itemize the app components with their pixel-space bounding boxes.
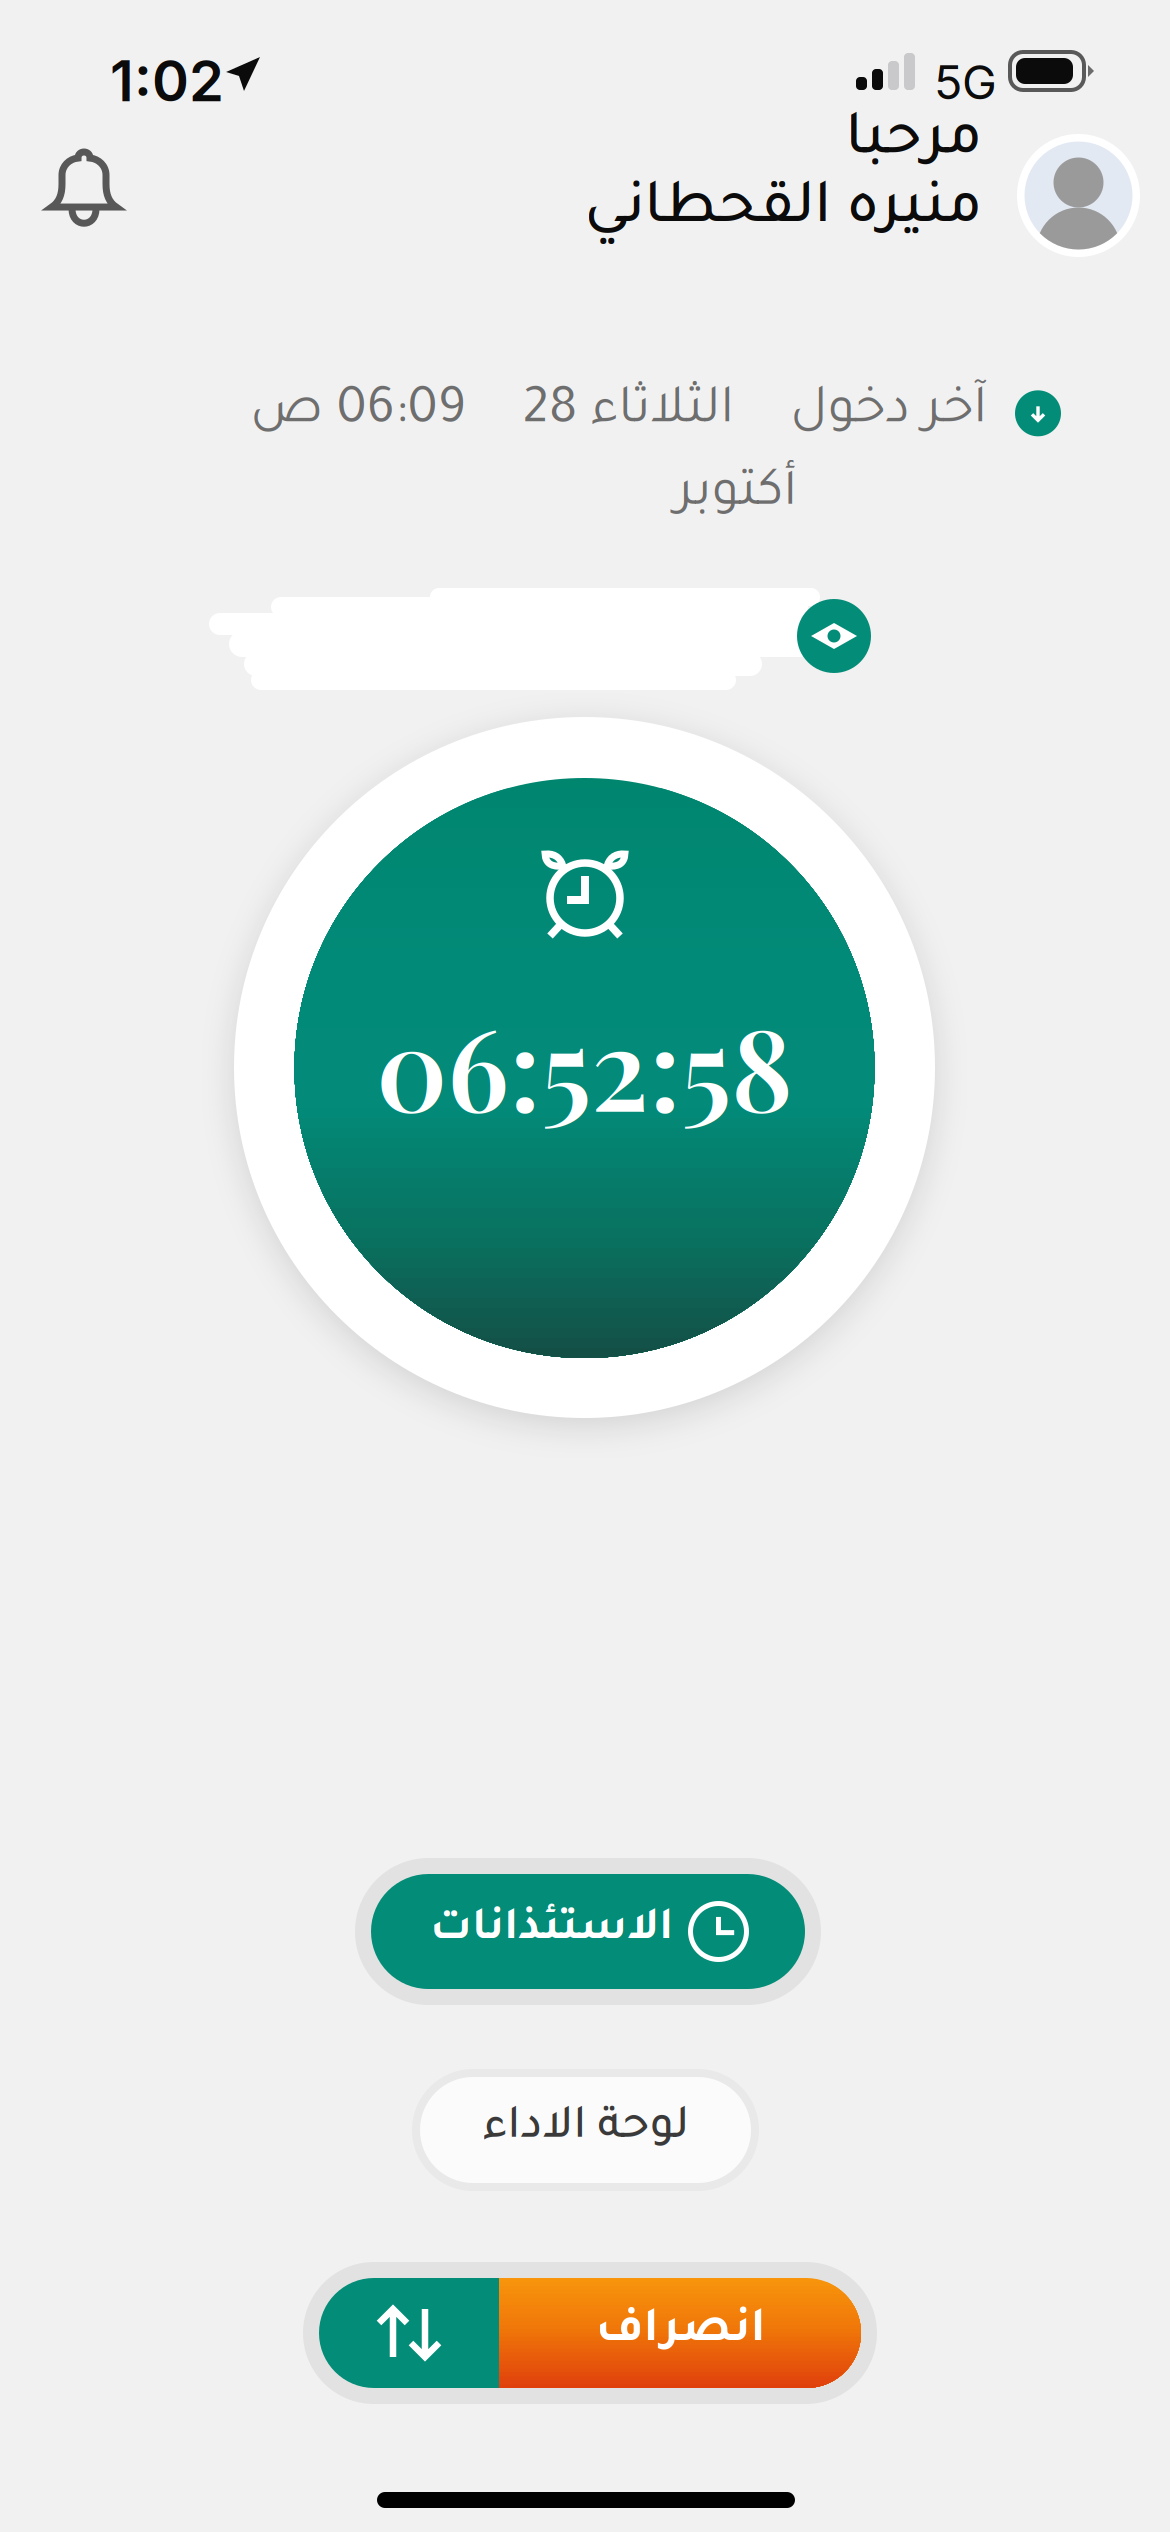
button[interactable]: Profile (1017, 134, 1140, 257)
staticText: أكتوبر (675, 469, 797, 523)
staticText: 06:09 ص (250, 386, 466, 441)
staticText: انصراف (595, 2308, 765, 2358)
staticText: 5G (934, 54, 997, 110)
staticText: الثلاثاء 28 (522, 386, 734, 441)
staticText: لوحة الاداء (482, 2106, 689, 2154)
staticText: الاستئذانات (429, 1908, 672, 1955)
staticText: آخر دخول (790, 386, 987, 441)
staticText: 1:02 (110, 47, 224, 115)
button[interactable]: الاستئذانات (355, 1858, 821, 2005)
button[interactable]: Notifications (47, 146, 121, 232)
button[interactable]: لوحة الاداء (412, 2069, 759, 2191)
button[interactable]: انصراف (303, 2262, 877, 2404)
staticText: منيره القحطاني (584, 181, 982, 243)
staticText: مرحبا (845, 112, 982, 175)
staticText: 06:52:58 (376, 989, 793, 1140)
button[interactable]: Show details (797, 599, 871, 673)
